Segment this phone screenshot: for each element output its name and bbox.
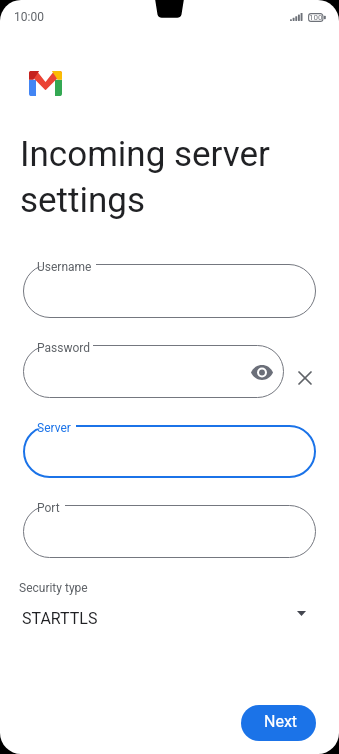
button[interactable]: Clear: [293, 366, 317, 390]
button[interactable]: Username: [23, 264, 316, 318]
button[interactable]: Password: [23, 345, 284, 398]
staticText: 10:00: [14, 10, 44, 24]
staticText: Incoming server settings: [20, 134, 320, 221]
staticText: Next: [264, 712, 298, 731]
button[interactable]: Next: [241, 705, 316, 741]
button[interactable]: Server: [23, 425, 316, 478]
button[interactable]: Show password: [250, 360, 274, 384]
button[interactable]: STARTTLS: [22, 606, 306, 632]
staticText: Port: [37, 501, 60, 515]
staticText: Password: [37, 341, 91, 355]
staticText: Security type: [19, 581, 88, 595]
button[interactable]: Port: [23, 505, 316, 558]
staticText: Username: [37, 260, 92, 274]
staticText: Server: [37, 421, 71, 435]
staticText: STARTTLS: [22, 609, 98, 628]
staticText: 100: [309, 13, 323, 22]
